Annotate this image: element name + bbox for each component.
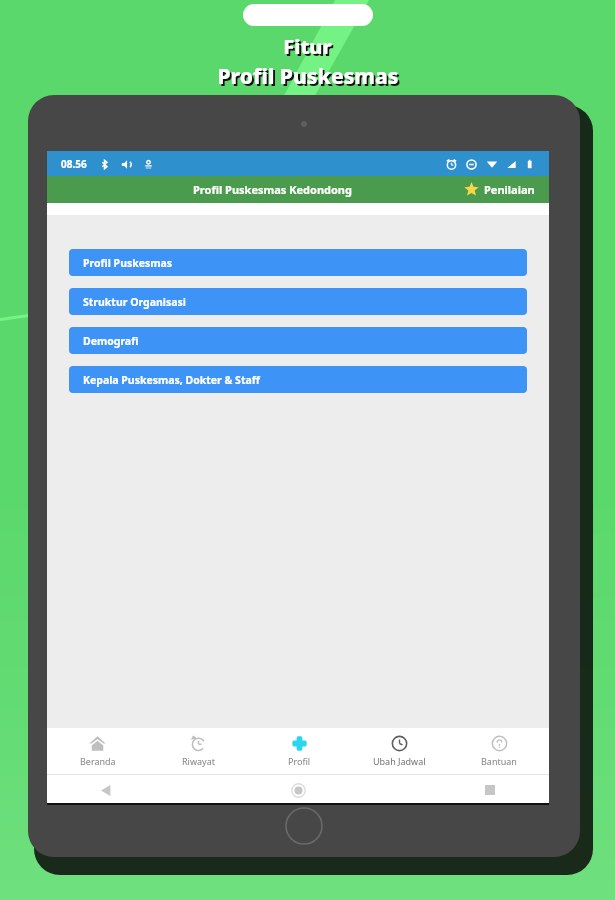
staticText: Fitur: [285, 35, 334, 62]
staticText: Penilaian: [484, 182, 535, 197]
staticText: Profil Puskesmas Kedondong: [193, 182, 352, 197]
button[interactable]: Back: [91, 775, 121, 805]
button[interactable]: Riwayat: [148, 728, 249, 774]
staticText: Riwayat: [182, 755, 215, 767]
staticText: Ubah Jadwal: [373, 755, 426, 767]
button[interactable]: Struktur Organisasi: [69, 288, 527, 315]
button[interactable]: Recent apps: [475, 775, 505, 805]
staticText: Kepala Puskesmas, Dokter & Staff: [83, 373, 260, 387]
staticText: Profil Puskesmas: [217, 62, 399, 91]
staticText: Profil: [288, 755, 311, 767]
staticText: Struktur Organisasi: [83, 295, 186, 309]
button[interactable]: Profil: [249, 728, 349, 774]
staticText: Profil Puskesmas: [219, 64, 401, 93]
button[interactable]: Beranda: [47, 728, 148, 774]
staticText: Profil Puskesmas: [83, 256, 173, 270]
staticText: 08.56: [61, 157, 87, 171]
button[interactable]: Demografi: [69, 327, 527, 354]
staticText: Beranda: [80, 755, 116, 767]
button[interactable]: Home: [283, 775, 313, 805]
button[interactable]: Profil Puskesmas: [69, 249, 527, 276]
button[interactable]: Bantuan: [449, 728, 549, 774]
button[interactable]: Ubah Jadwal: [349, 728, 449, 774]
staticText: Fitur: [283, 33, 332, 60]
staticText: Bantuan: [481, 755, 517, 767]
button[interactable]: Kepala Puskesmas, Dokter & Staff: [69, 366, 527, 393]
staticText: Demografi: [83, 334, 139, 348]
button[interactable]: Penilaian: [450, 178, 549, 201]
